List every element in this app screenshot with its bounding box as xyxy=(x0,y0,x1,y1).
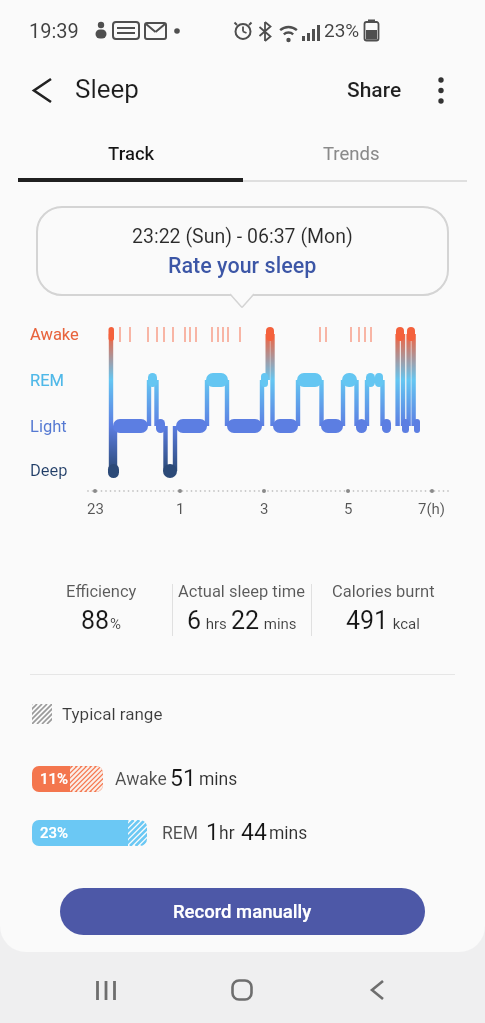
button[interactable] xyxy=(22,66,66,114)
button[interactable] xyxy=(60,962,150,1018)
staticText: 23% xyxy=(324,19,360,41)
staticText: 23:22 (Sun) - 06:37 (Mon) xyxy=(132,225,353,248)
button[interactable] xyxy=(197,962,287,1018)
staticText: 23 xyxy=(87,500,104,518)
staticText: 491 xyxy=(346,606,389,635)
staticText: 1 xyxy=(176,500,185,518)
staticText: Actual sleep time xyxy=(178,582,305,601)
staticText: Awake xyxy=(115,769,167,790)
staticText: % xyxy=(110,615,121,633)
staticText: Track xyxy=(108,143,155,165)
button[interactable] xyxy=(424,66,460,114)
staticText: kcal xyxy=(389,615,420,633)
button[interactable]: Trends xyxy=(243,130,459,178)
staticText: Deep xyxy=(30,461,68,480)
button[interactable]: 23:22 (Sun) - 06:37 (Mon) xyxy=(36,206,449,296)
button[interactable]: Record manually xyxy=(60,888,425,935)
button[interactable]: Track xyxy=(20,130,243,178)
staticText: mins xyxy=(269,823,308,844)
staticText: 19:39 xyxy=(29,19,79,42)
staticText: Trends xyxy=(323,143,380,165)
staticText: 22 xyxy=(231,606,260,635)
staticText: Awake xyxy=(30,325,79,344)
staticText: 1 xyxy=(206,819,219,846)
staticText: 88 xyxy=(81,606,110,635)
staticText: Typical range xyxy=(62,704,163,724)
staticText: REM xyxy=(30,371,64,390)
staticText: Record manually xyxy=(173,901,312,923)
staticText: 6 xyxy=(187,606,202,635)
staticText: 7(h) xyxy=(418,500,446,518)
staticText: hr xyxy=(219,823,235,844)
staticText: 51 xyxy=(170,765,196,792)
staticText: Efficiency xyxy=(66,582,137,601)
staticText: 11% xyxy=(40,770,69,788)
staticText: mins xyxy=(260,615,297,633)
staticText: 5 xyxy=(344,500,353,518)
button[interactable]: Share xyxy=(335,68,413,112)
staticText: Calories burnt xyxy=(332,582,435,601)
staticText: Sleep xyxy=(75,74,139,104)
staticText: hrs xyxy=(202,615,231,633)
staticText: mins xyxy=(199,769,238,790)
staticText: REM xyxy=(162,823,199,844)
staticText: 3 xyxy=(260,500,269,518)
staticText: Light xyxy=(30,417,67,436)
staticText: 23% xyxy=(40,824,69,842)
staticText: Rate your sleep xyxy=(168,253,317,278)
button[interactable] xyxy=(332,962,422,1018)
staticText: 44 xyxy=(241,819,267,846)
staticText: Share xyxy=(347,78,402,103)
